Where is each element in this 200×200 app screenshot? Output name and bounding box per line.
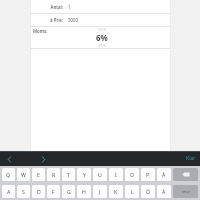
button[interactable]: retur	[173, 185, 198, 198]
button[interactable]: S	[17, 185, 30, 198]
button[interactable]: Ö	[141, 185, 155, 198]
button[interactable]: Backspace	[173, 168, 198, 181]
button[interactable]: P	[141, 168, 155, 181]
button[interactable]: W	[17, 168, 30, 181]
button[interactable]: F	[47, 185, 60, 198]
staticText: Klar	[186, 155, 196, 162]
staticText: 1	[68, 4, 71, 10]
staticText: E	[37, 171, 40, 178]
staticText: O	[130, 171, 135, 178]
button[interactable]: I	[109, 168, 123, 181]
button[interactable]: K	[109, 185, 123, 198]
button[interactable]: Å	[157, 168, 171, 181]
button[interactable]: U	[93, 168, 107, 181]
button[interactable]: T	[62, 168, 75, 181]
button[interactable]: A	[2, 185, 15, 198]
staticText: J	[99, 188, 101, 195]
staticText: H	[82, 188, 86, 195]
staticText: Å	[162, 171, 166, 178]
staticText: S	[22, 188, 25, 195]
staticText: Ä	[162, 188, 166, 195]
staticText: retur	[182, 189, 190, 194]
button[interactable]: H	[77, 185, 91, 198]
button[interactable]: L	[125, 185, 139, 198]
button[interactable]: Q	[2, 168, 15, 181]
staticText: I	[115, 171, 117, 178]
staticText: K	[114, 188, 118, 195]
staticText: D	[37, 188, 41, 195]
staticText: F	[52, 188, 55, 195]
button[interactable]: Klar	[186, 155, 196, 162]
button[interactable]: G	[62, 185, 75, 198]
staticText: Q	[6, 171, 11, 178]
button[interactable]: Y	[77, 168, 91, 181]
staticText: T	[67, 171, 70, 178]
staticText: 25 %	[98, 43, 107, 48]
staticText: Y	[83, 171, 86, 178]
button[interactable]: D	[32, 185, 45, 198]
button[interactable]: Ä	[157, 185, 171, 198]
button[interactable]: Next field	[36, 152, 50, 166]
button[interactable]: Previous field	[2, 152, 16, 166]
staticText: Antal:	[31, 4, 63, 10]
button[interactable]: R	[47, 168, 60, 181]
staticText: W	[21, 171, 26, 178]
staticText: P	[146, 171, 150, 178]
button[interactable]: E	[32, 168, 45, 181]
staticText: A	[7, 188, 11, 195]
staticText: G	[67, 188, 71, 195]
button[interactable]: O	[125, 168, 139, 181]
staticText: à Pris:	[31, 17, 63, 23]
button[interactable]: Moms:	[31, 27, 170, 48]
staticText: 5000	[68, 17, 79, 23]
staticText: Ö	[146, 188, 151, 195]
staticText: R	[52, 171, 56, 178]
button[interactable]: à Pris:	[31, 14, 170, 26]
staticText: 12 %	[98, 27, 107, 32]
button[interactable]: Antal:	[31, 1, 170, 13]
staticText: L	[131, 188, 134, 195]
staticText: U	[98, 171, 102, 178]
staticText: Moms:	[33, 28, 48, 34]
staticText: 6%	[96, 32, 108, 43]
button[interactable]: J	[93, 185, 107, 198]
